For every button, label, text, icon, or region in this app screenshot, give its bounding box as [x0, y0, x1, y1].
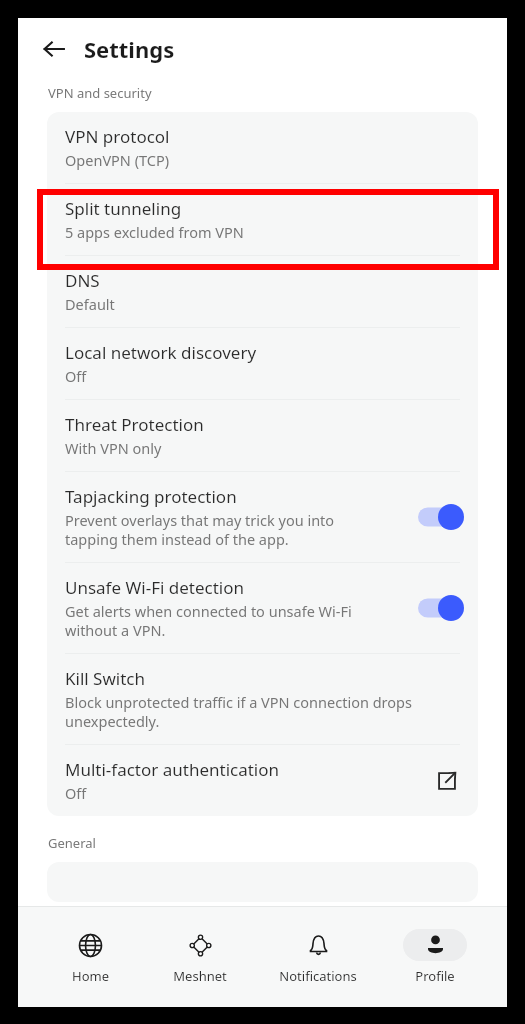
staticText: General [48, 834, 96, 852]
staticText: Off [65, 783, 87, 803]
staticText: Split tunneling [65, 197, 182, 220]
staticText: Threat Protection [65, 413, 204, 436]
staticText: Default [65, 294, 115, 314]
staticText: Tapjacking protection [65, 485, 237, 508]
staticText: Get alerts when connected to unsafe Wi-F… [65, 601, 352, 640]
staticText: Home [72, 967, 109, 985]
staticText: Block unprotected traffic if a VPN conne… [65, 692, 412, 731]
button[interactable]: Profile [397, 925, 473, 989]
staticText: Prevent overlays that may trick you into… [65, 510, 335, 549]
staticText: OpenVPN (TCP) [65, 150, 170, 170]
staticText: VPN and security [48, 84, 152, 102]
button[interactable]: Notifications [273, 925, 363, 989]
staticText: Multi-factor authentication [65, 758, 280, 781]
button[interactable]: Back [32, 27, 76, 71]
button[interactable]: Split tunneling [47, 184, 478, 255]
button[interactable]: Threat Protection [47, 400, 478, 471]
button[interactable]: VPN protocol [47, 112, 478, 183]
staticText: 5 apps excluded from VPN [65, 222, 244, 242]
button[interactable]: Home [52, 925, 128, 989]
button[interactable]: DNS [47, 256, 478, 327]
button[interactable]: Open external link [430, 764, 464, 798]
button[interactable]: Toggle on [418, 504, 464, 530]
staticText: Meshnet [173, 967, 227, 985]
staticText: Local network discovery [65, 341, 257, 364]
staticText: Kill Switch [65, 667, 145, 690]
button[interactable]: Unsafe Wi-Fi detection [47, 563, 478, 653]
staticText: DNS [65, 269, 100, 292]
button[interactable]: Toggle on [418, 595, 464, 621]
staticText: Notifications [279, 967, 357, 985]
button[interactable]: Meshnet [162, 925, 238, 989]
button[interactable]: Local network discovery [47, 328, 478, 399]
staticText: With VPN only [65, 438, 162, 458]
button[interactable]: Kill Switch [47, 654, 478, 744]
staticText: Off [65, 366, 87, 386]
button[interactable]: Multi-factor authentication [47, 745, 478, 816]
staticText: Settings [84, 34, 175, 64]
button[interactable]: Tapjacking protection [47, 472, 478, 562]
staticText: VPN protocol [65, 125, 170, 148]
staticText: Unsafe Wi-Fi detection [65, 576, 245, 599]
staticText: Profile [415, 967, 455, 985]
